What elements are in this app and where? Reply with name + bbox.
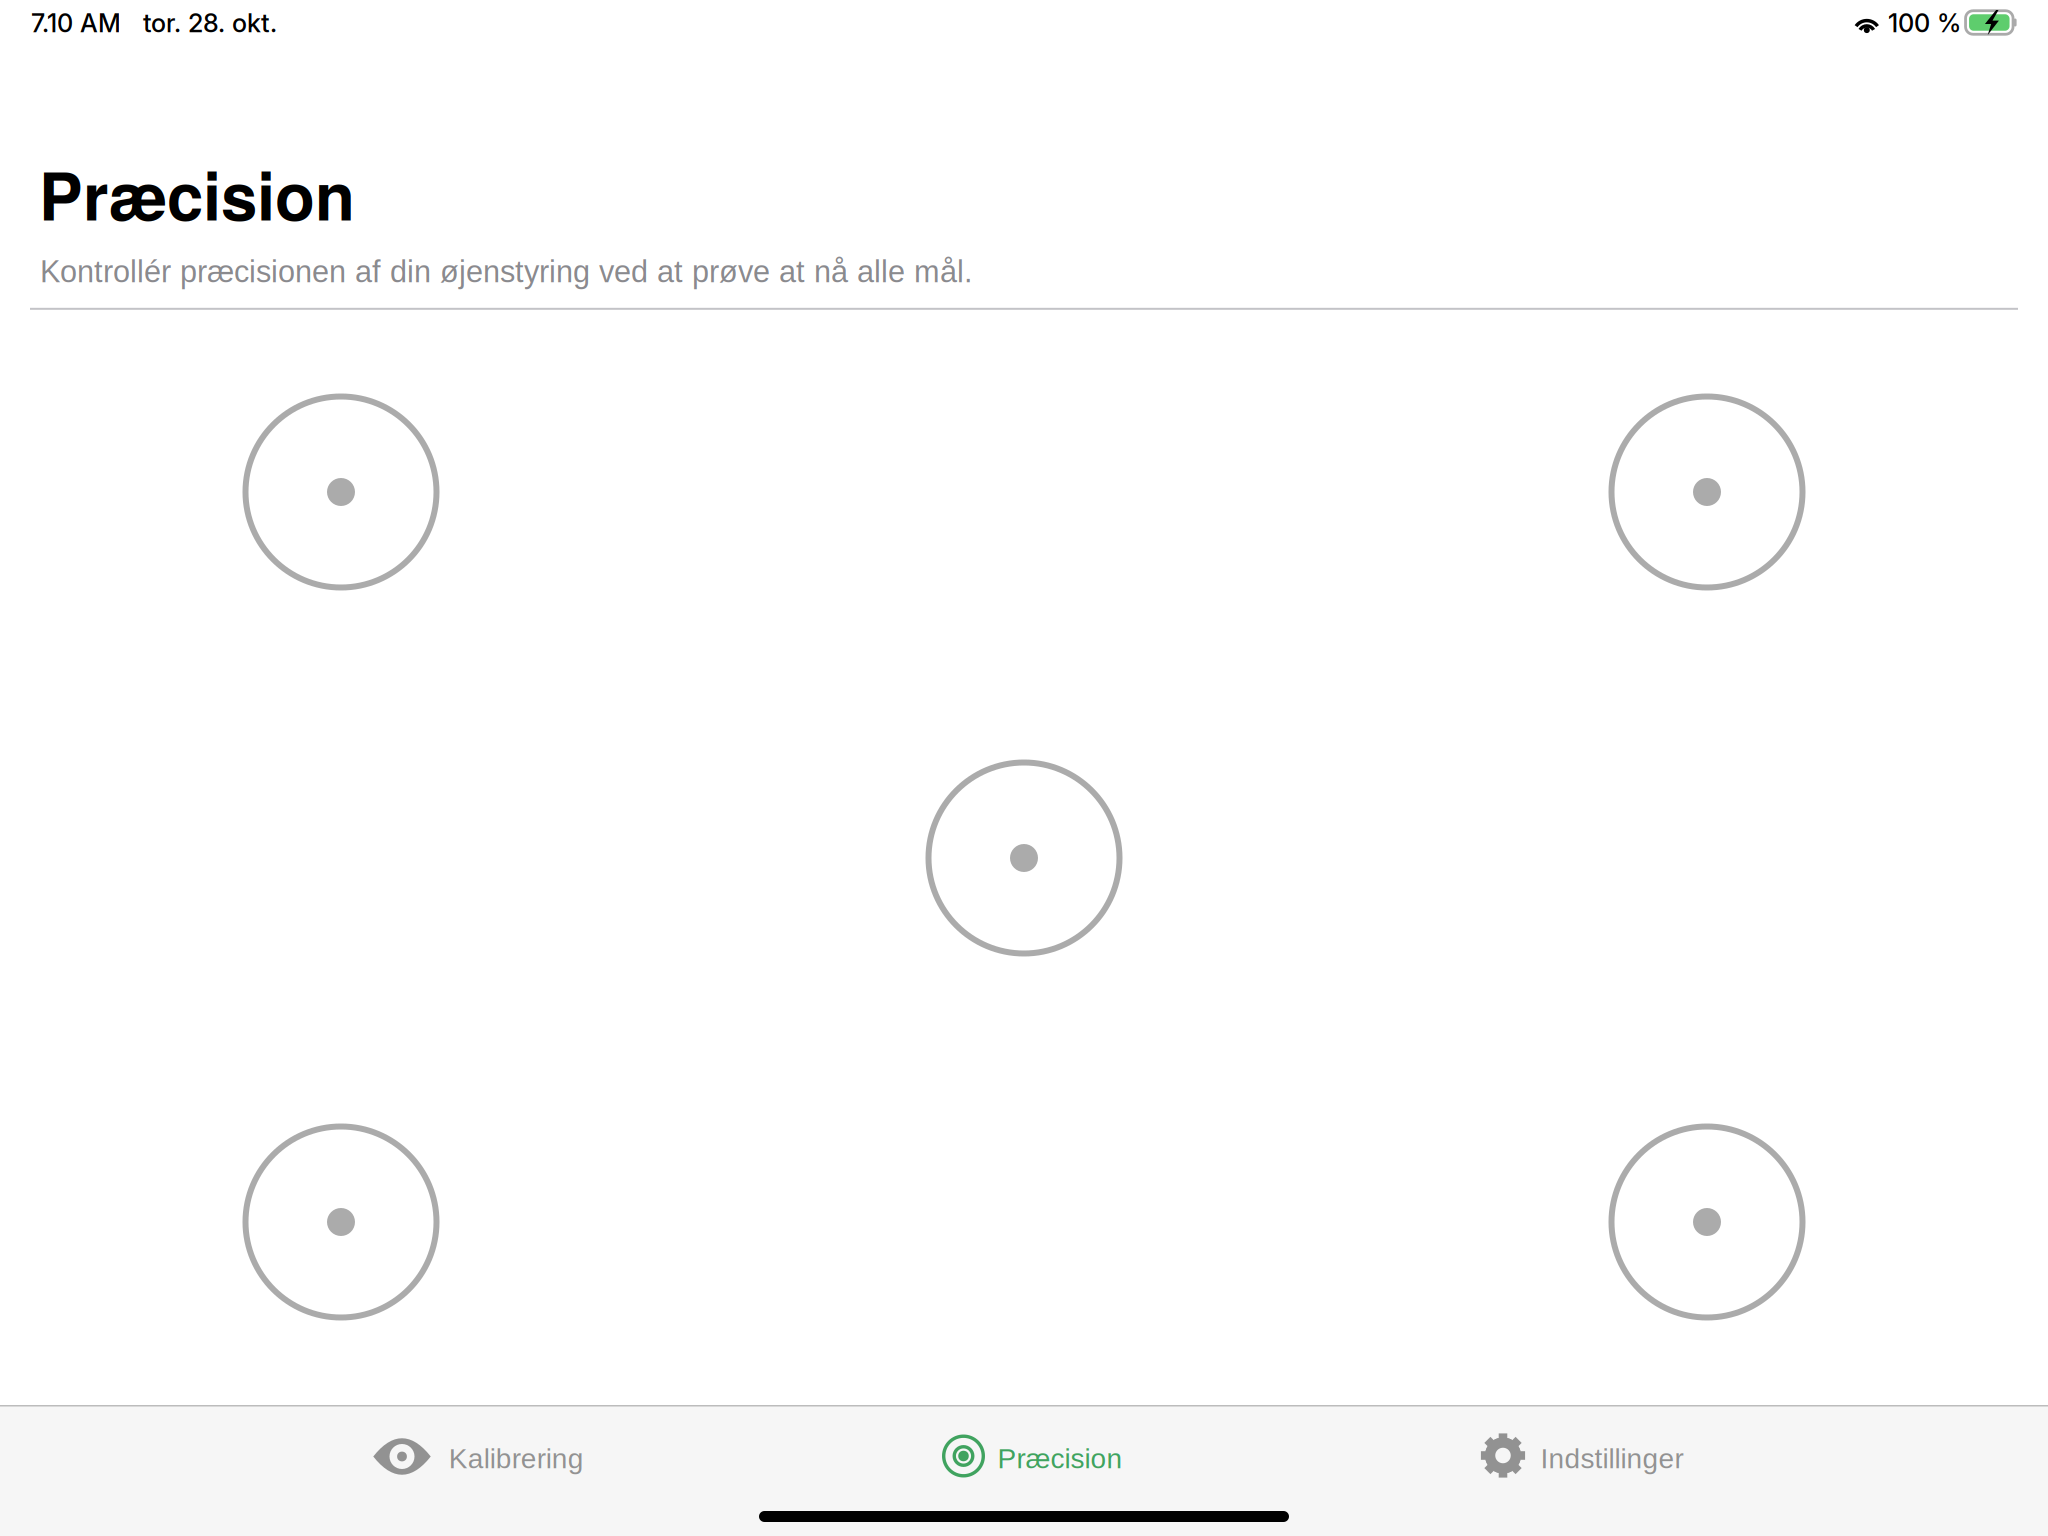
- staticText: 7.10 AM: [31, 8, 121, 38]
- button[interactable]: Præcision: [754, 1412, 1305, 1504]
- staticText: Præcision: [39, 147, 355, 241]
- staticText: tor. 28. okt.: [143, 8, 277, 38]
- staticText: Indstillinger: [1540, 1443, 1683, 1474]
- staticText: Præcision: [997, 1443, 1122, 1474]
- staticText: Kontrollér præcisionen af din øjenstyrin…: [40, 255, 973, 289]
- staticText: Kalibrering: [449, 1443, 584, 1474]
- button[interactable]: Kalibrering: [203, 1412, 754, 1504]
- staticText: 100 %: [1888, 8, 1961, 38]
- button[interactable]: Indstillinger: [1305, 1412, 1856, 1504]
